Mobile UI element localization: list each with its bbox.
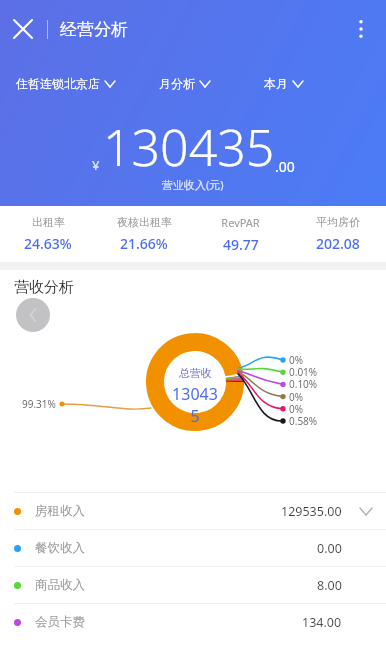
staticText: 房租收入 — [35, 503, 85, 519]
button[interactable]: Close — [2, 8, 44, 50]
staticText: ¥ — [92, 156, 100, 174]
staticText: 129535.00 — [281, 503, 342, 520]
staticText: 经营分析 — [60, 19, 128, 40]
staticText: 出租率 — [32, 215, 65, 229]
button[interactable]: RevPAR — [192, 206, 289, 262]
staticText: 住哲连锁北京店 — [16, 76, 100, 91]
button[interactable]: 餐饮收入 — [0, 530, 386, 566]
staticText: 月分析 — [159, 76, 195, 91]
staticText: RevPAR — [221, 215, 260, 230]
button[interactable]: 出租率 — [0, 206, 96, 262]
staticText: 24.63% — [24, 234, 72, 253]
button[interactable]: Previous — [16, 298, 50, 332]
staticText: 0.00 — [317, 540, 342, 557]
staticText: 营收分析 — [14, 278, 74, 297]
staticText: 21.66% — [120, 234, 168, 253]
staticText: 0.10% — [289, 377, 318, 391]
staticText: 8.00 — [317, 577, 342, 594]
button[interactable]: 月分析 — [157, 73, 212, 94]
button[interactable]: More options — [340, 8, 382, 50]
staticText: 0% — [289, 353, 304, 367]
button[interactable]: 夜核出租率 — [96, 206, 192, 262]
staticText: 130435 — [168, 383, 222, 427]
staticText: 0.58% — [289, 414, 318, 428]
button[interactable]: 房租收入 — [0, 493, 386, 529]
staticText: 夜核出租率 — [117, 215, 172, 229]
button[interactable]: 本月 — [262, 73, 305, 94]
staticText: 平均房价 — [316, 215, 360, 229]
staticText: 0.01% — [289, 365, 318, 379]
staticText: 134.00 — [302, 614, 342, 631]
staticText: 0% — [289, 390, 304, 404]
staticText: 0% — [289, 402, 304, 416]
staticText: .00 — [275, 157, 295, 176]
staticText: 130435 — [103, 113, 275, 181]
button[interactable]: 会员卡费 — [0, 604, 386, 640]
staticText: 202.08 — [316, 234, 360, 253]
staticText: 99.31% — [22, 397, 56, 411]
staticText: 总营收 — [179, 366, 212, 380]
staticText: 会员卡费 — [35, 614, 85, 630]
staticText: 本月 — [264, 76, 288, 91]
staticText: 商品收入 — [35, 577, 85, 593]
button[interactable]: 住哲连锁北京店 — [14, 73, 117, 94]
staticText: 营业收入(元) — [162, 177, 224, 192]
button[interactable]: 商品收入 — [0, 567, 386, 603]
staticText: 49.77 — [223, 235, 259, 254]
button[interactable]: 平均房价 — [289, 206, 386, 262]
staticText: 餐饮收入 — [35, 540, 85, 556]
